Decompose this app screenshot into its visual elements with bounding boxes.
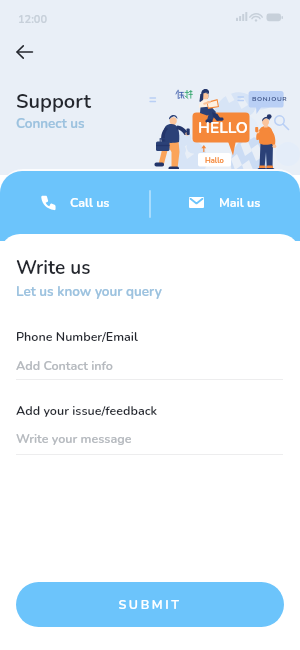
- staticText: Let us know your query: [16, 282, 162, 300]
- staticText: Connect us: [16, 114, 85, 132]
- staticText: Write your message: [16, 430, 132, 447]
- staticText: Support: [16, 88, 91, 115]
- staticText: Call us: [70, 194, 110, 211]
- staticText: HELLO: [198, 117, 248, 138]
- other: Mail: [189, 197, 204, 208]
- staticText: Add Contact info: [16, 357, 113, 374]
- button[interactable]: SUBMIT: [16, 582, 284, 627]
- staticText: Phone Number/Email: [16, 328, 138, 345]
- staticText: Hallo: [205, 155, 224, 165]
- button[interactable]: Call: [0, 171, 150, 233]
- staticText: SUBMIT: [118, 596, 182, 613]
- staticText: BONJOUR: [252, 94, 288, 103]
- button[interactable]: Back: [8, 36, 40, 68]
- button[interactable]: Mail: [150, 171, 300, 233]
- staticText: Add your issue/feedback: [16, 402, 158, 419]
- staticText: Mail us: [219, 194, 261, 211]
- staticText: Write us: [16, 255, 91, 281]
- staticText: 12:00: [18, 12, 48, 27]
- other: Call: [41, 195, 55, 209]
